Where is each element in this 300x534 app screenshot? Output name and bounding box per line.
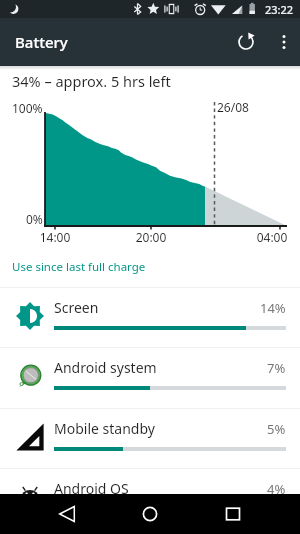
staticText: 34% – approx. 5 hrs left [12, 71, 171, 91]
staticText: Mobile standby [54, 419, 155, 438]
button[interactable]: Mobile standby [0, 409, 300, 468]
button[interactable]: Recent apps [212, 494, 254, 534]
staticText: Android OS [54, 479, 129, 498]
button[interactable]: Screen [0, 288, 300, 347]
staticText: 5% [267, 420, 286, 438]
button[interactable]: Back [46, 494, 88, 534]
staticText: 4% [267, 480, 286, 498]
staticText: Battery [15, 32, 68, 52]
staticText: 14% [260, 299, 286, 317]
staticText: 100% [12, 100, 43, 116]
staticText: 0% [26, 211, 43, 227]
staticText: Screen [54, 298, 99, 317]
staticText: 14:00 [35, 229, 75, 245]
button[interactable]: Android OS [0, 469, 300, 528]
staticText: Android system [54, 358, 157, 377]
button[interactable]: Android system [0, 348, 300, 407]
staticText: 7% [267, 359, 286, 377]
staticText: Use since last full charge [12, 259, 146, 275]
staticText: 04:00 [252, 229, 292, 245]
staticText: 20:00 [131, 229, 171, 245]
staticText: 26/08 [217, 99, 249, 115]
staticText: 23:22 [265, 2, 294, 17]
button[interactable]: Home [129, 494, 171, 534]
button[interactable]: Use since last full charge [0, 250, 300, 287]
button[interactable]: More options [268, 18, 300, 66]
button[interactable]: Refresh [224, 18, 268, 66]
